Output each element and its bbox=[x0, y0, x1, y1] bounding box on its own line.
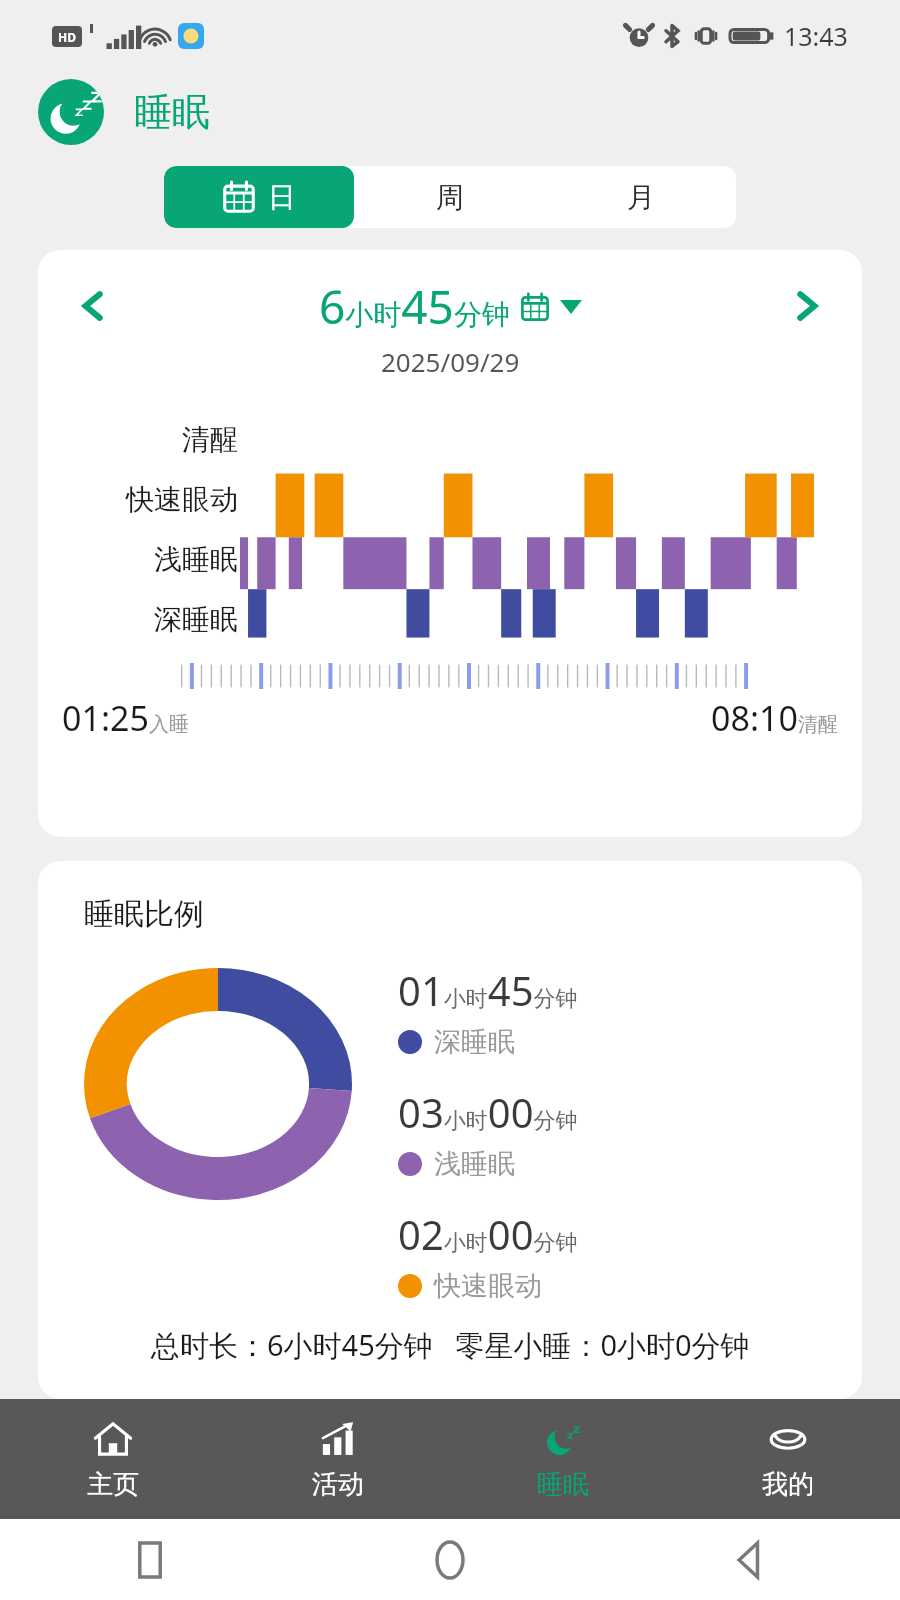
button[interactable]: 我的 bbox=[675, 1399, 900, 1519]
staticText: 02小时00分钟 bbox=[398, 1207, 578, 1261]
button[interactable]: Next day bbox=[752, 268, 862, 344]
staticText: 01:25入睡 bbox=[62, 695, 189, 741]
staticText: HD bbox=[58, 29, 76, 45]
staticText: 月 bbox=[627, 180, 655, 215]
staticText: 13:43 bbox=[784, 19, 848, 53]
staticText: 快速眼动 bbox=[126, 482, 238, 517]
staticText: 睡眠比例 bbox=[84, 895, 204, 933]
staticText: 6小时45分钟 bbox=[319, 275, 510, 338]
button[interactable]: Previous day bbox=[38, 268, 148, 344]
button[interactable]: 周 bbox=[354, 166, 545, 228]
staticText: 快速眼动 bbox=[434, 1269, 542, 1303]
staticText: 周 bbox=[436, 180, 464, 215]
staticText: 深睡眠 bbox=[154, 602, 238, 637]
staticText: 03小时00分钟 bbox=[398, 1085, 578, 1139]
button[interactable]: Pick date bbox=[520, 292, 582, 322]
button[interactable]: 睡眠 bbox=[450, 1399, 675, 1519]
staticText: 浅睡眠 bbox=[154, 542, 238, 577]
staticText: 我的 bbox=[762, 1468, 814, 1501]
staticText: 睡眠 bbox=[537, 1468, 589, 1501]
staticText: 日 bbox=[268, 180, 296, 215]
staticText: 浅睡眠 bbox=[434, 1147, 515, 1181]
button[interactable]: 主页 bbox=[0, 1399, 225, 1519]
staticText: 清醒 bbox=[182, 422, 238, 457]
button[interactable]: 月 bbox=[545, 166, 736, 228]
staticText: 睡眠 bbox=[134, 88, 210, 136]
staticText: 2025/09/29 bbox=[381, 344, 520, 379]
button[interactable]: 活动 bbox=[225, 1399, 450, 1519]
staticText: 01小时45分钟 bbox=[398, 963, 578, 1017]
staticText: 08:10清醒 bbox=[711, 695, 838, 741]
staticText: 深睡眠 bbox=[434, 1025, 515, 1059]
staticText: 总时长：6小时45分钟 零星小睡：0小时0分钟 bbox=[151, 1325, 750, 1365]
staticText: 主页 bbox=[87, 1468, 139, 1501]
button[interactable]: 日 bbox=[164, 166, 354, 228]
staticText: 活动 bbox=[312, 1468, 364, 1501]
